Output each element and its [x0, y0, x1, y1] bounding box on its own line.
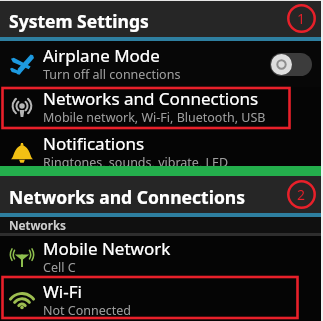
staticText: Networks and Connections	[9, 185, 245, 209]
button[interactable]: Wi-Fi	[0, 278, 323, 321]
button[interactable]: Notifications	[0, 132, 323, 166]
button[interactable]: Airplane Mode	[0, 41, 323, 87]
staticText: 1	[297, 9, 306, 28]
staticText: Notifications	[43, 132, 145, 155]
staticText: Airplane Mode	[43, 44, 160, 67]
button[interactable]: Airplane mode toggle	[270, 53, 312, 76]
staticText: Ringtones, sounds, vibrate, LED	[43, 154, 229, 166]
staticText: Networks and Connections	[43, 87, 259, 110]
button[interactable]: Mobile Network	[0, 236, 323, 278]
staticText: Turn off all connections	[43, 66, 181, 83]
staticText: Cell C	[43, 259, 76, 276]
staticText: 2	[297, 185, 306, 204]
staticText: Mobile Network	[43, 237, 171, 260]
staticText: Networks	[9, 217, 66, 233]
staticText: Wi-Fi	[43, 280, 82, 303]
staticText: Not Connected	[43, 302, 132, 319]
button[interactable]: Networks and Connections	[0, 87, 323, 127]
staticText: System Settings	[9, 9, 149, 33]
staticText: Mobile network, Wi-Fi, Bluetooth, USB	[43, 109, 266, 126]
